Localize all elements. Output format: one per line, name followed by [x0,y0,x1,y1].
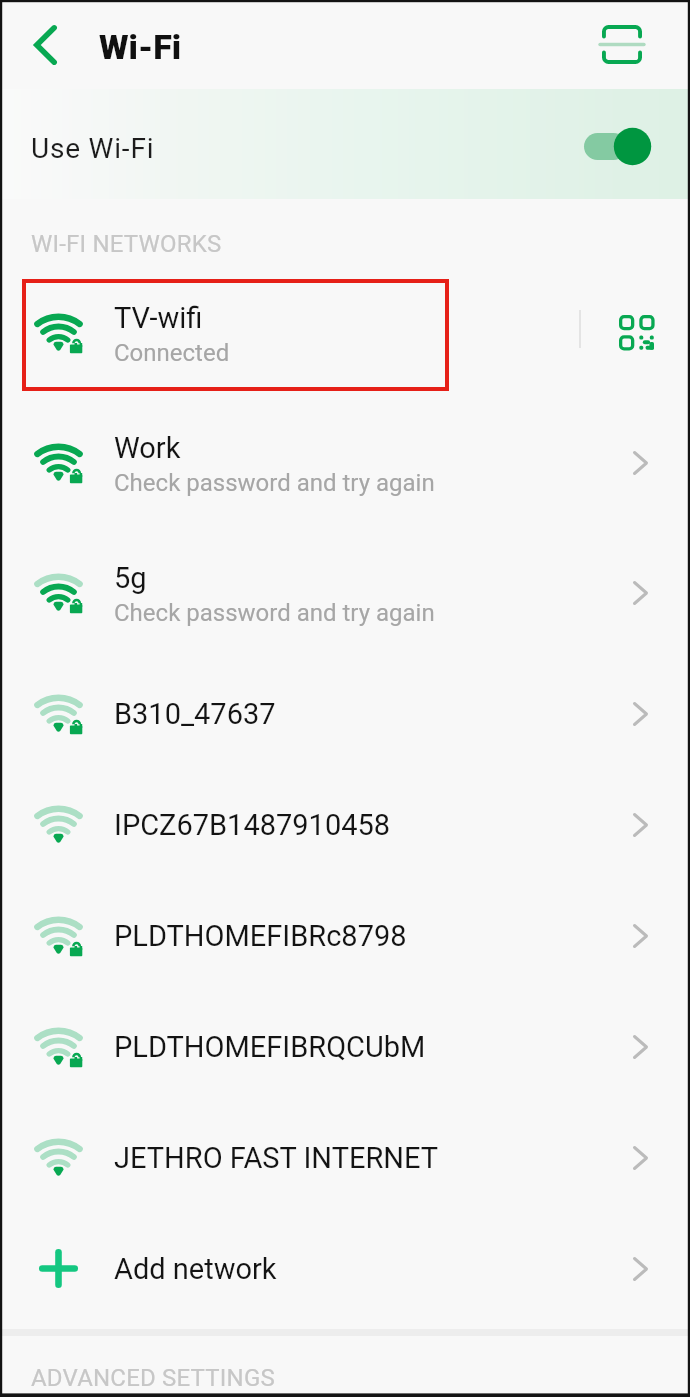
button[interactable]: Scan QR code [579,0,665,89]
button[interactable]: Back [0,0,90,89]
button[interactable]: TV-wifi [0,268,690,398]
staticText: IPCZ67B1487910458 [114,808,391,842]
staticText: Connected [114,339,230,367]
button[interactable]: Share Wi-Fi QR code [619,315,655,351]
button[interactable]: IPCZ67B1487910458 [0,769,690,880]
staticText: 5g [114,561,147,595]
button[interactable]: 5g [0,528,690,658]
staticText: Check password and try again [114,599,435,627]
staticText: PLDTHOMEFIBRc8798 [114,919,407,953]
staticText: Work [114,431,181,465]
staticText: ADVANCED SETTINGS [31,1364,275,1392]
staticText: WI-FI NETWORKS [31,230,222,258]
button[interactable]: Use Wi-Fi [0,89,690,199]
button[interactable]: B310_47637 [0,658,690,769]
button[interactable]: Work [0,398,690,528]
staticText: TV-wifi [114,301,203,335]
button[interactable]: PLDTHOMEFIBRc8798 [0,880,690,991]
staticText: PLDTHOMEFIBRQCUbM [114,1030,426,1064]
staticText: B310_47637 [114,697,276,731]
staticText: Wi-Fi [99,27,182,67]
button[interactable]: Add network [0,1213,690,1324]
button[interactable]: JETHRO FAST INTERNET [0,1102,690,1213]
staticText: Use Wi-Fi [31,132,155,165]
staticText: Add network [114,1252,277,1286]
staticText: JETHRO FAST INTERNET [114,1141,439,1175]
staticText: Check password and try again [114,469,435,497]
button[interactable]: PLDTHOMEFIBRQCUbM [0,991,690,1102]
